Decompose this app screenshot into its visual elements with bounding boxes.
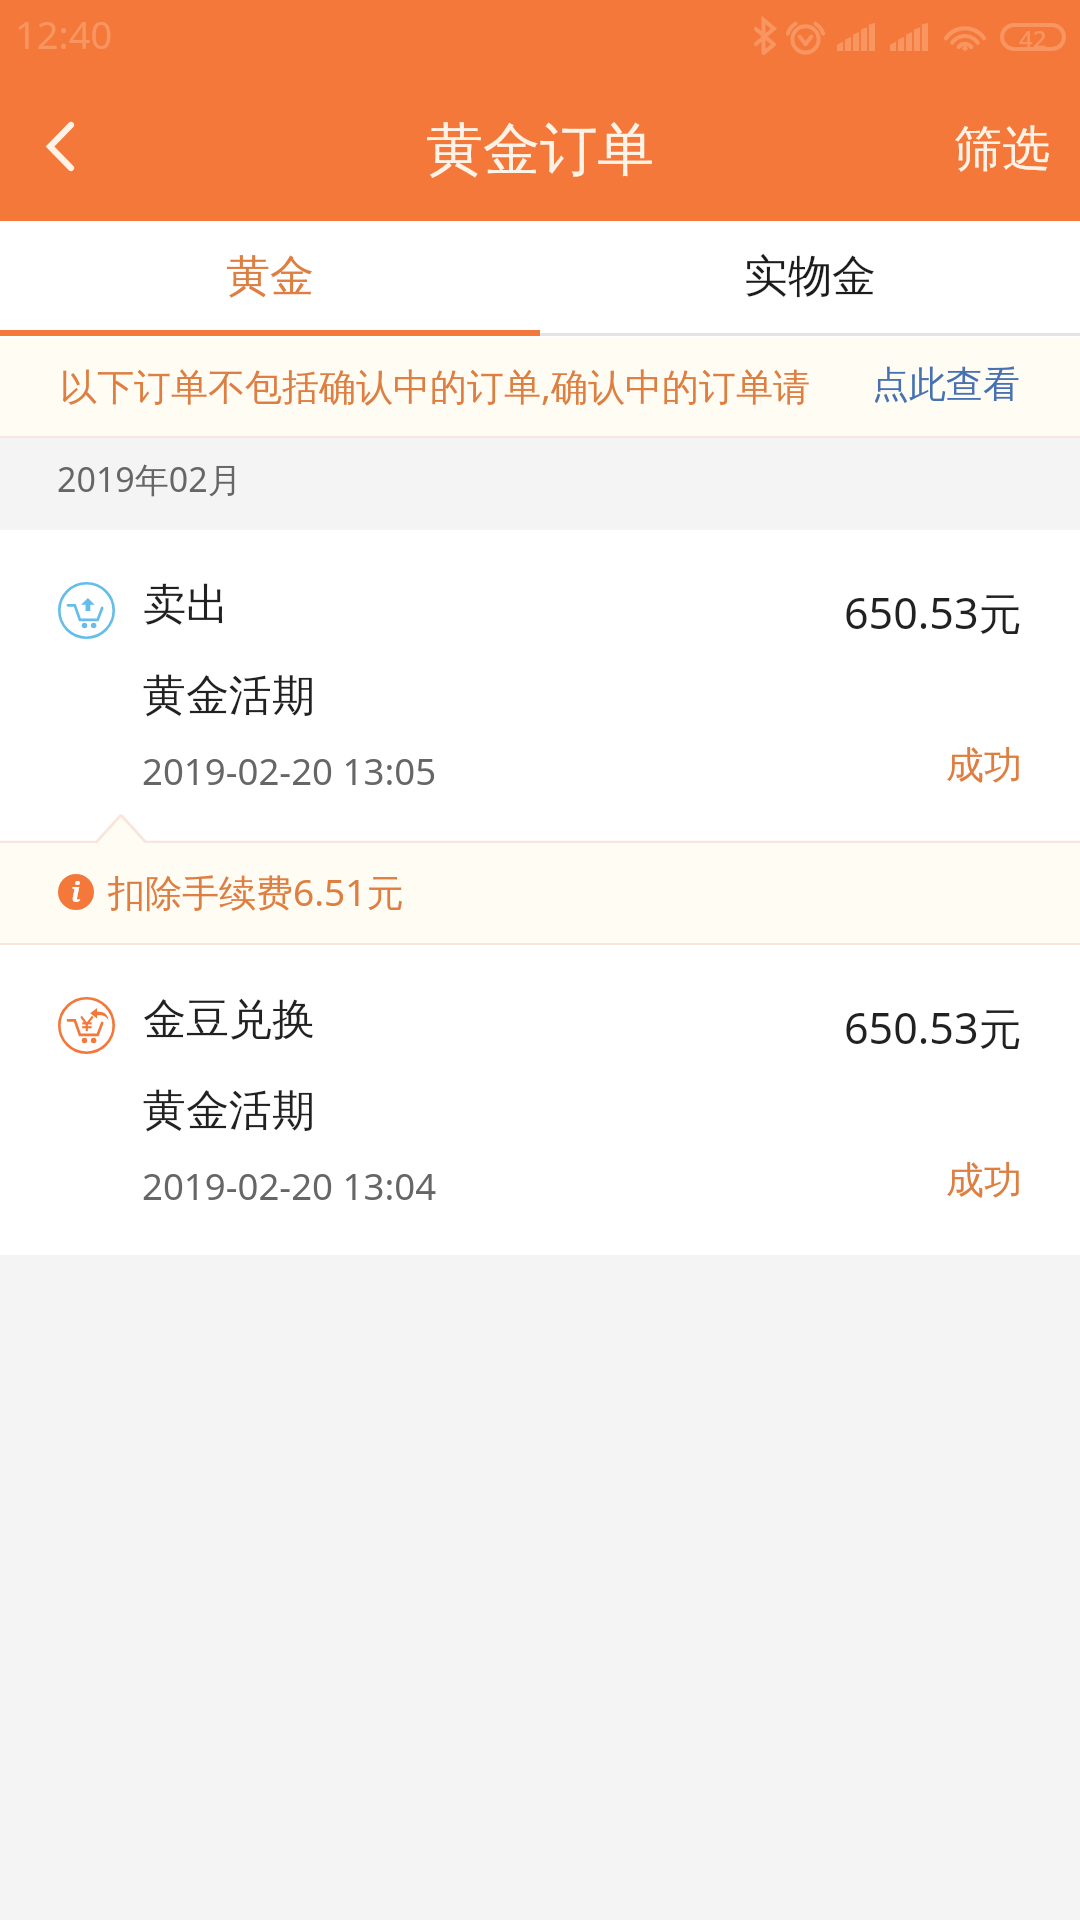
staticText: 黄金活期 [143,1084,315,1138]
staticText: 2019年02月 [57,456,242,502]
staticText: 成功 [946,741,1022,789]
staticText: 实物金 [744,249,876,304]
staticText: 点此查看 [872,361,1020,408]
staticText: 黄金订单 [426,114,654,186]
button[interactable]: 实物金 [540,221,1080,332]
staticText: 以下订单不包括确认中的订单,确认中的订单请 [60,360,810,411]
staticText: 2019-02-20 13:05 [142,746,437,796]
staticText: 筛选 [954,119,1050,179]
button[interactable]: 黄金 [0,221,540,332]
staticText: 650.53元 [844,998,1022,1057]
staticText: 12:40 [15,8,113,60]
staticText: i [71,874,81,909]
button[interactable]: 卖出 [0,530,1080,815]
button[interactable]: 筛选 [924,0,1080,195]
staticText: 黄金活期 [143,669,315,723]
staticText: 650.53元 [844,583,1022,642]
staticText: 2019-02-20 13:04 [142,1161,437,1211]
button[interactable]: i [0,843,1080,945]
button[interactable]: Back [0,86,120,206]
staticText: 卖出 [143,578,229,632]
staticText: 黄金 [226,249,314,304]
button[interactable]: 点此查看 [852,349,1080,428]
staticText: 成功 [946,1156,1022,1204]
button[interactable]: 金豆兑换 [0,945,1080,1255]
staticText: 扣除手续费6.51元 [108,866,404,917]
staticText: 42 [1019,22,1047,50]
staticText: 金豆兑换 [143,993,315,1047]
